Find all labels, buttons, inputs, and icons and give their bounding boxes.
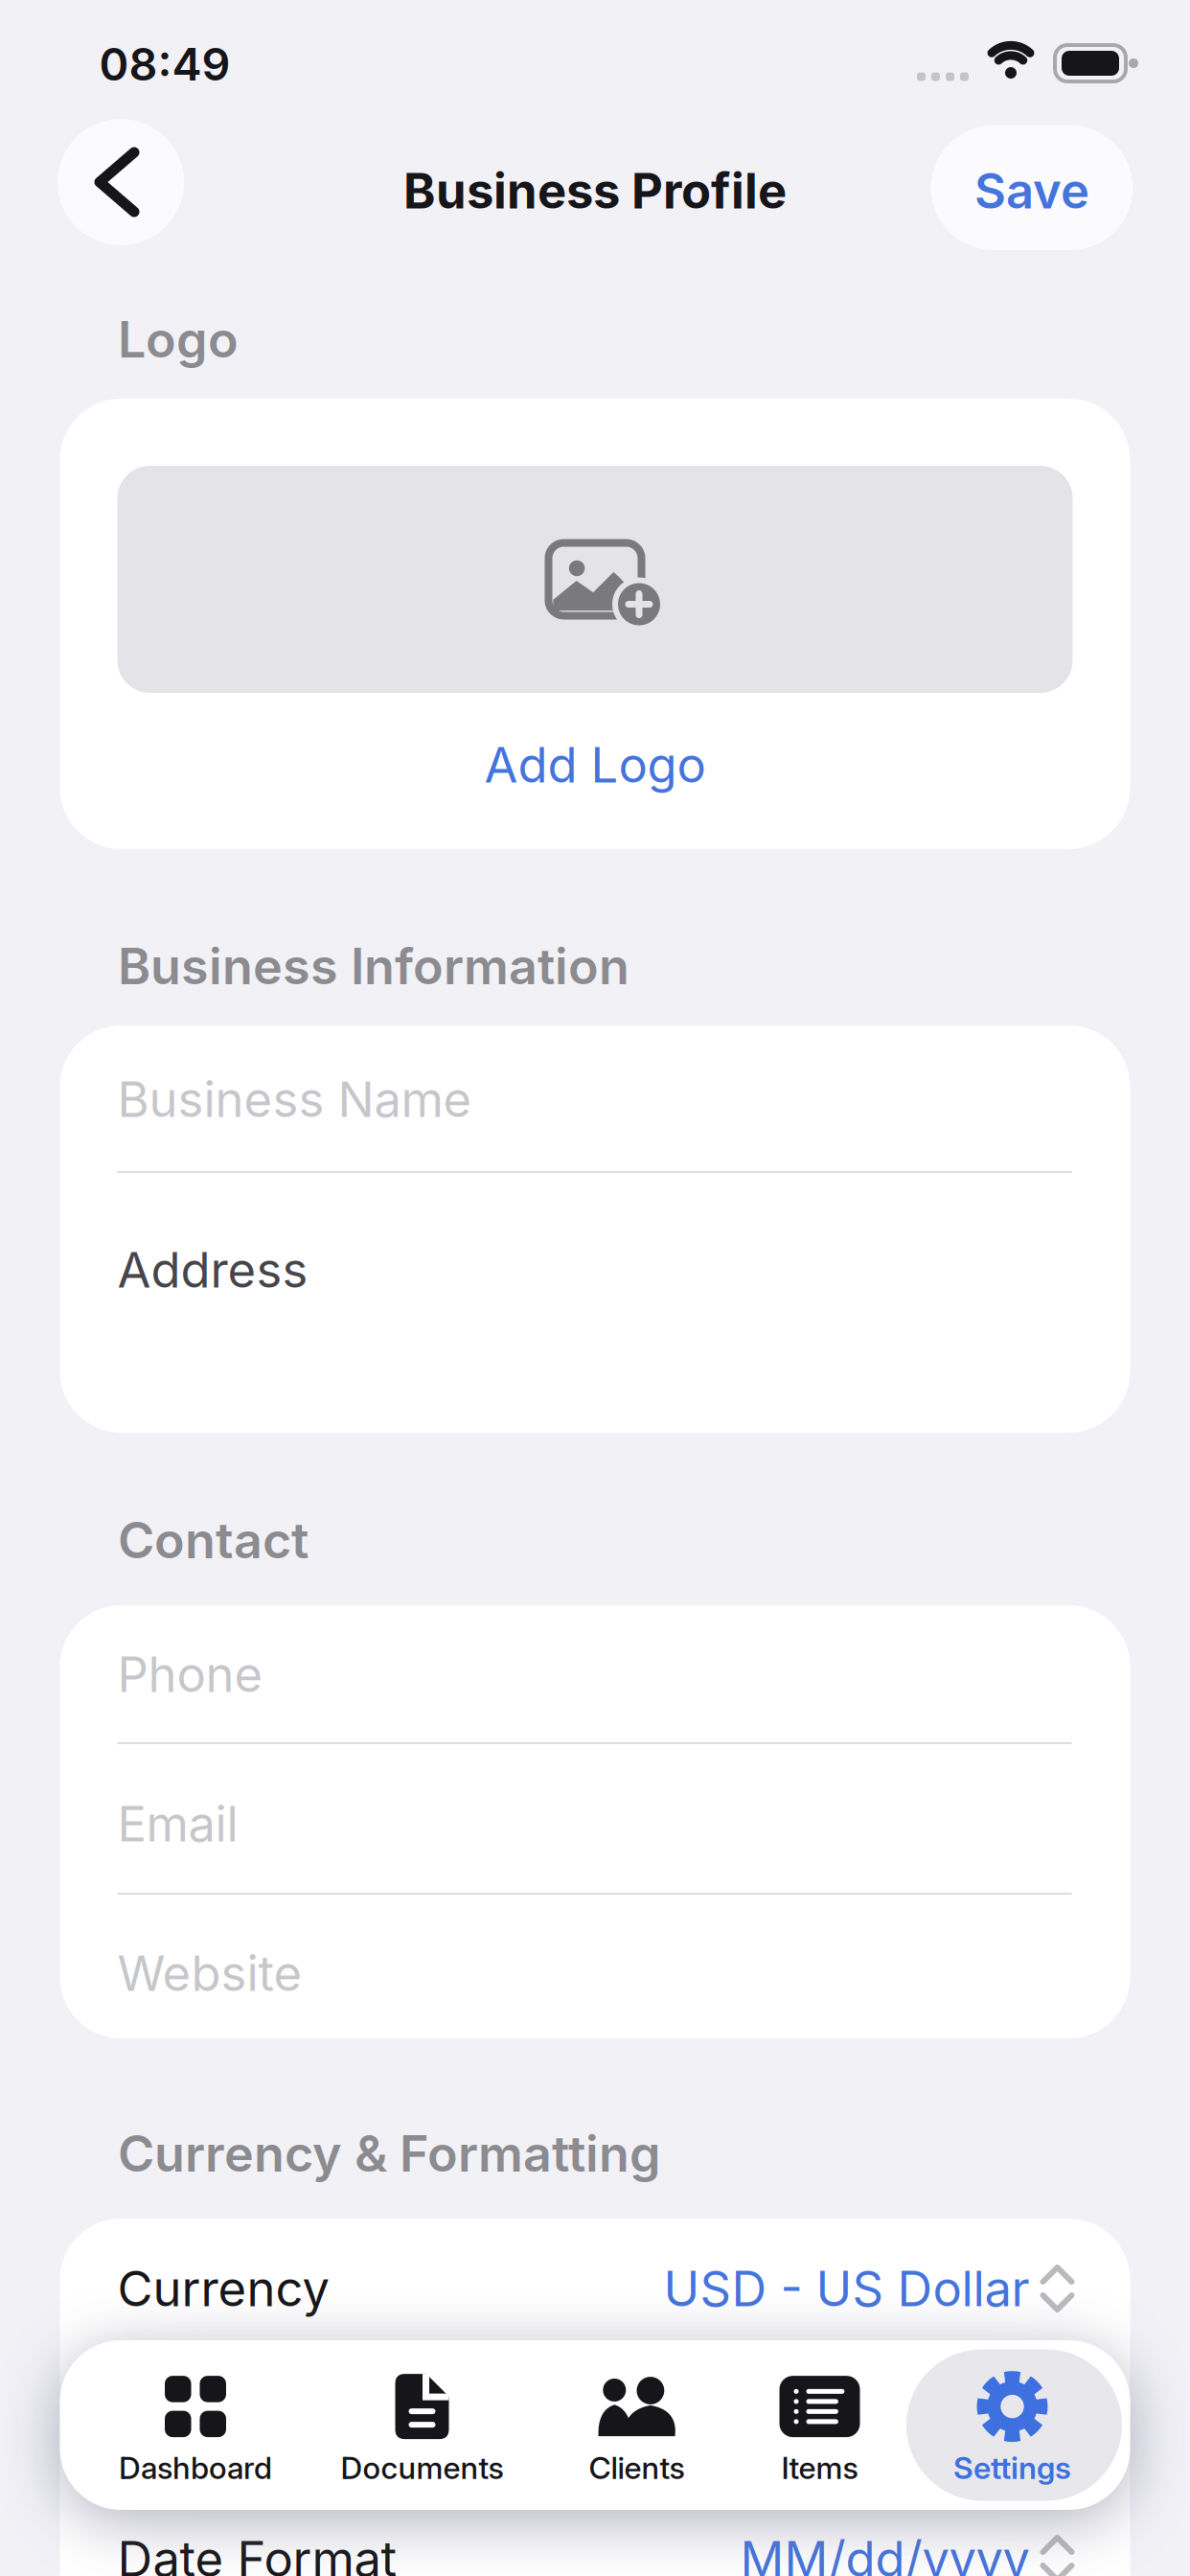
button[interactable]: Phone <box>117 1646 1072 1703</box>
staticText: Phone <box>117 1646 263 1703</box>
button[interactable]: Documents <box>309 2353 535 2506</box>
button[interactable]: Back <box>57 119 184 245</box>
staticText: Contact <box>118 1511 309 1569</box>
staticText: Business Profile <box>403 162 787 219</box>
button[interactable]: Currency <box>117 2260 1072 2317</box>
staticText: Clients <box>589 2450 685 2486</box>
button[interactable]: Website <box>117 1945 1072 2002</box>
staticText: Currency & Formatting <box>118 2124 661 2183</box>
button[interactable]: Business Name <box>117 1071 1072 1128</box>
staticText: Items <box>781 2450 858 2486</box>
staticText: Date Format <box>117 2530 397 2576</box>
button[interactable]: Add Logo <box>484 736 706 793</box>
button[interactable]: Items <box>707 2353 933 2506</box>
staticText: Dashboard <box>119 2450 272 2486</box>
button[interactable]: Save <box>931 126 1133 250</box>
staticText: Add Logo <box>484 736 706 793</box>
staticText: Address <box>117 1241 308 1298</box>
staticText: Business Information <box>118 937 629 995</box>
staticText: Settings <box>953 2450 1071 2486</box>
button[interactable]: Clients <box>524 2353 750 2506</box>
button[interactable]: Email <box>117 1795 1072 1852</box>
staticText: Business Name <box>117 1071 472 1128</box>
button[interactable]: Add Logo <box>117 466 1073 693</box>
staticText: USD - US Dollar <box>664 2260 1030 2317</box>
staticText: Currency <box>117 2260 329 2317</box>
staticText: Email <box>117 1795 238 1852</box>
button[interactable]: Dashboard <box>82 2353 309 2506</box>
staticText: 08:49 <box>99 38 230 91</box>
staticText: Documents <box>341 2450 503 2486</box>
staticText: MM/dd/yyyy <box>740 2530 1030 2576</box>
button[interactable]: Address <box>117 1241 1072 1298</box>
staticText: Save <box>974 162 1089 219</box>
staticText: Logo <box>118 310 239 369</box>
button[interactable]: Date Format <box>117 2530 1072 2576</box>
button[interactable]: Settings <box>899 2353 1125 2506</box>
staticText: Website <box>117 1945 302 2002</box>
